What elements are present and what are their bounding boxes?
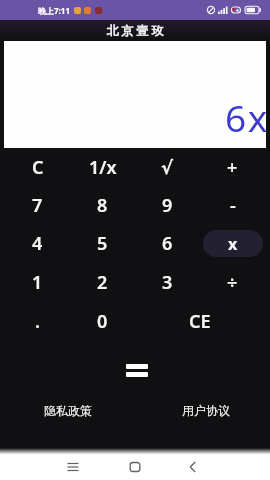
- staticText: -: [230, 193, 236, 218]
- button[interactable]: 5: [70, 224, 135, 263]
- button[interactable]: 9: [135, 186, 200, 224]
- button[interactable]: [90, 454, 180, 480]
- button[interactable]: 1/x: [70, 148, 135, 186]
- staticText: √: [161, 157, 174, 178]
- staticText: CE: [189, 309, 211, 334]
- button[interactable]: [0, 454, 90, 480]
- button[interactable]: 3: [135, 263, 200, 302]
- button[interactable]: -: [200, 186, 265, 224]
- staticText: 4: [32, 231, 43, 256]
- button[interactable]: √: [135, 148, 200, 186]
- button[interactable]: CE: [135, 302, 265, 341]
- staticText: 9: [162, 193, 173, 218]
- staticText: 北京壹玫: [105, 23, 165, 38]
- staticText: ÷: [227, 270, 238, 295]
- button[interactable]: 1: [5, 263, 70, 302]
- staticText: 1/x: [89, 155, 117, 180]
- button[interactable]: .: [5, 302, 70, 341]
- staticText: .: [35, 309, 40, 334]
- staticText: C: [32, 155, 44, 180]
- staticText: 6: [162, 231, 173, 256]
- staticText: 8: [97, 193, 108, 218]
- button[interactable]: 隐私政策: [44, 403, 92, 418]
- button[interactable]: 4: [5, 224, 70, 263]
- button[interactable]: x: [203, 230, 263, 257]
- staticText: 7: [32, 193, 43, 218]
- button[interactable]: ÷: [200, 263, 265, 302]
- button[interactable]: 用户协议: [182, 403, 230, 418]
- staticText: +: [227, 155, 238, 180]
- button[interactable]: +: [200, 148, 265, 186]
- button[interactable]: [126, 364, 148, 377]
- button[interactable]: 2: [70, 263, 135, 302]
- button[interactable]: 6: [135, 224, 200, 263]
- button[interactable]: [180, 454, 270, 480]
- button[interactable]: 0: [70, 302, 135, 341]
- staticText: 用户协议: [182, 403, 230, 418]
- button[interactable]: 8: [70, 186, 135, 224]
- staticText: 2: [97, 270, 108, 295]
- staticText: 6x: [225, 92, 269, 142]
- staticText: 5: [97, 231, 108, 256]
- staticText: 0: [97, 309, 108, 334]
- button[interactable]: 7: [5, 186, 70, 224]
- staticText: 隐私政策: [44, 403, 92, 418]
- staticText: x: [228, 233, 238, 255]
- staticText: 1: [32, 270, 43, 295]
- staticText: 3: [162, 270, 173, 295]
- button[interactable]: C: [5, 148, 70, 186]
- staticText: 晚上7:11: [38, 5, 70, 16]
